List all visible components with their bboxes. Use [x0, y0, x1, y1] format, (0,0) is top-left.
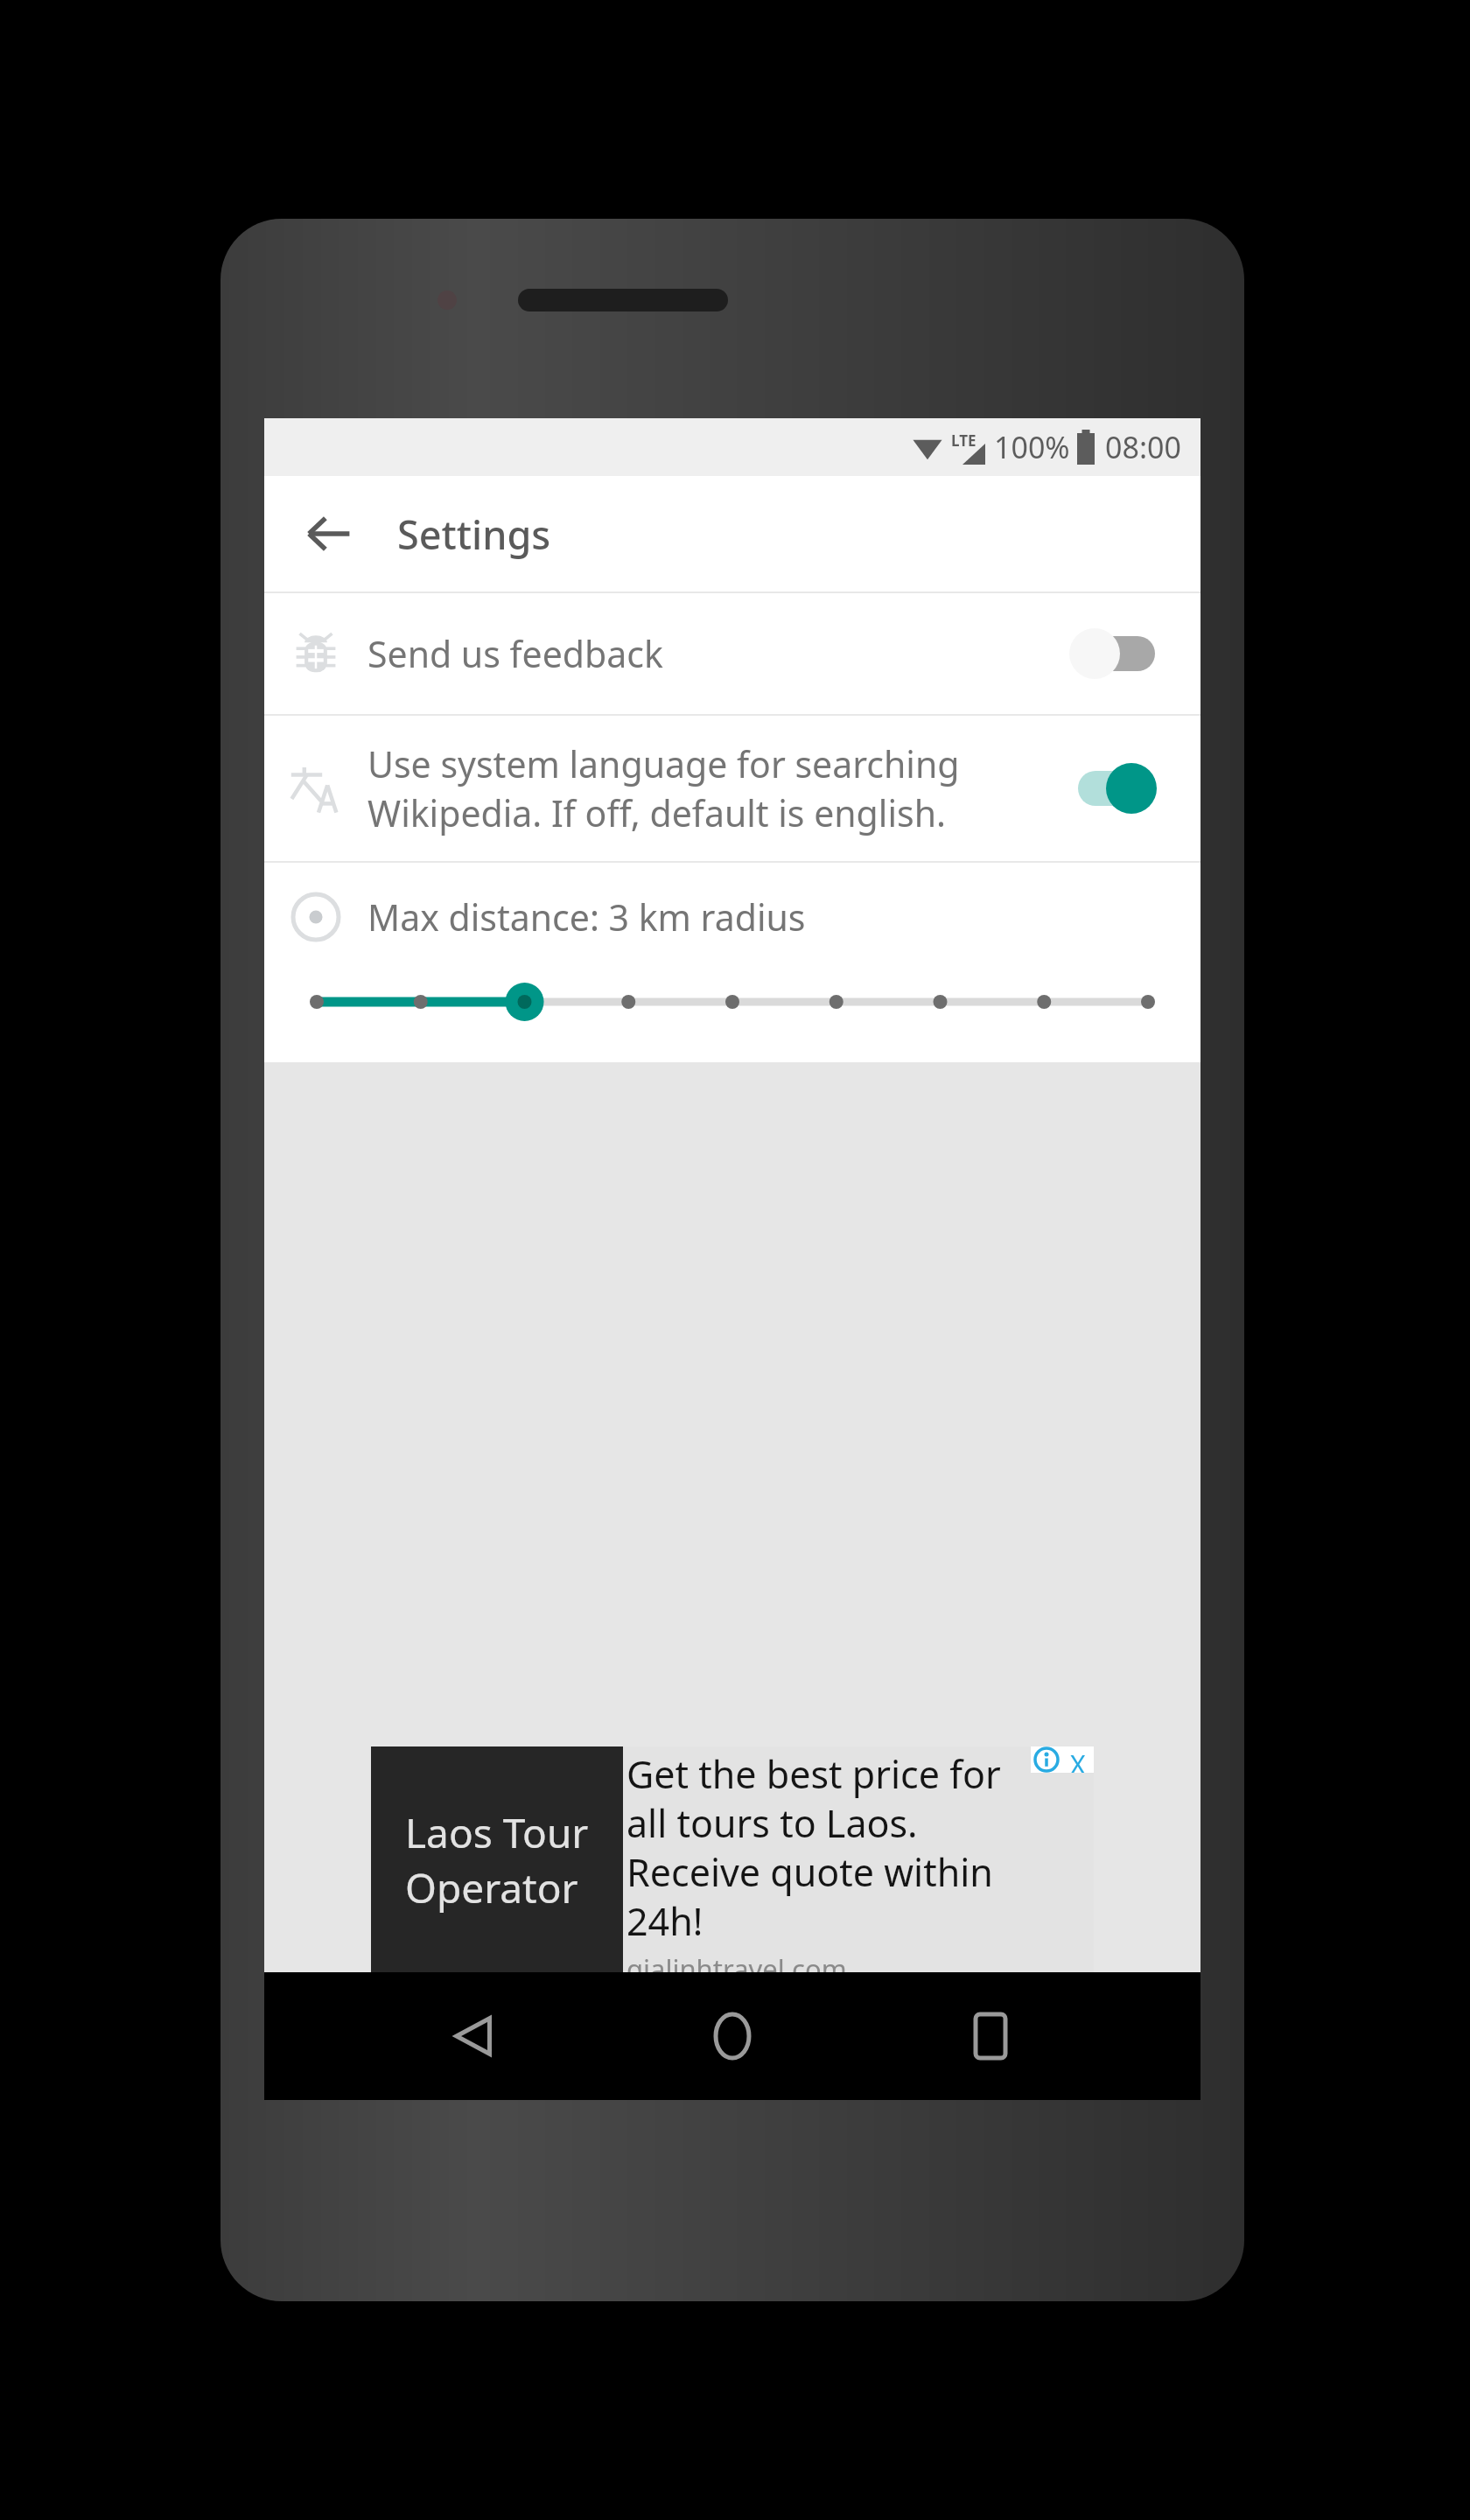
staticText: Settings [397, 507, 551, 561]
staticText: Get the best price for all tours to Laos… [626, 1748, 1001, 1947]
staticText: LTE [951, 430, 976, 451]
button[interactable]: Max distance: 3 km radius [264, 863, 1200, 1062]
button[interactable]: Back [289, 493, 369, 574]
staticText: 08:00 [1105, 427, 1181, 467]
button[interactable]: Send us feedback [264, 593, 1200, 714]
staticText: 100% [994, 427, 1070, 467]
staticText: X [1070, 1746, 1086, 1773]
staticText: Use system language for searching Wikipe… [367, 739, 1069, 837]
button[interactable]: Back [426, 1988, 522, 2084]
button[interactable]: Use system language for searching Wikipe… [264, 716, 1200, 861]
staticText: gialinhtravel.com [626, 1950, 847, 1972]
button[interactable]: Toggle on [1069, 757, 1164, 820]
button[interactable]: Home [684, 1988, 780, 2084]
staticText: Send us feedback [367, 629, 1069, 678]
button[interactable]: Toggle off [1069, 622, 1164, 685]
button[interactable]: Ad information [1033, 1746, 1060, 1773]
staticText: Laos Tour Operator [405, 1805, 589, 1914]
button[interactable]: Close ad [1065, 1746, 1091, 1773]
button[interactable]: Laos Tour Operator [371, 1746, 1094, 1972]
staticText: Max distance: 3 km radius [367, 892, 806, 941]
button[interactable] [264, 971, 1200, 1032]
button[interactable]: Recent apps [942, 1988, 1039, 2084]
